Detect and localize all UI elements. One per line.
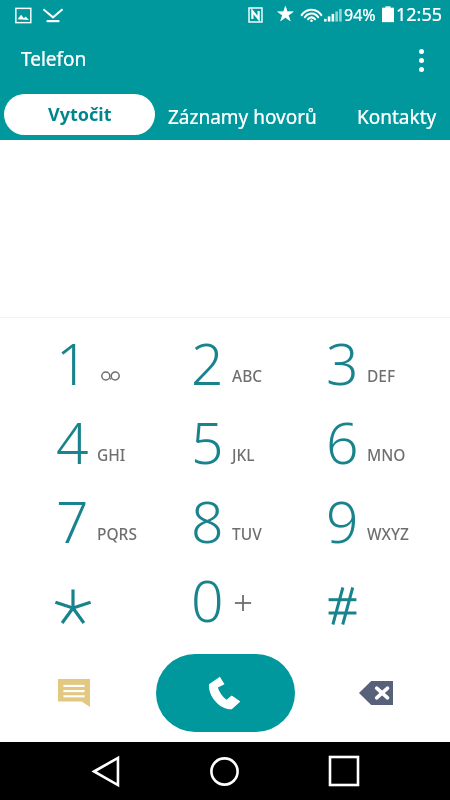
staticText: 3 xyxy=(326,324,359,392)
button[interactable] xyxy=(23,555,158,634)
button[interactable]: 8 xyxy=(158,476,293,555)
button[interactable]: 9 xyxy=(293,476,428,555)
staticText: 5 xyxy=(191,403,224,471)
button[interactable]: Send message xyxy=(24,644,124,742)
button[interactable]: More options xyxy=(399,38,443,82)
staticText: 1 xyxy=(56,324,89,392)
staticText: 0 xyxy=(191,561,224,629)
button[interactable]: Back xyxy=(76,742,136,800)
staticText: 7 xyxy=(56,482,89,550)
button[interactable]: 1 xyxy=(23,318,158,397)
button[interactable]: Záznamy hovorů xyxy=(163,96,321,137)
button[interactable]: Home xyxy=(194,742,254,800)
staticText: 6 xyxy=(326,403,359,471)
staticText: MNO xyxy=(367,444,406,465)
staticText: 8 xyxy=(191,482,224,550)
button[interactable]: 7 xyxy=(23,476,158,555)
staticText: Záznamy hovorů xyxy=(168,104,317,130)
staticText: Vytočit xyxy=(48,102,112,127)
staticText: WXYZ xyxy=(367,523,410,544)
button[interactable]: 5 xyxy=(158,397,293,476)
staticText: Telefon xyxy=(21,46,87,72)
staticText: 94% xyxy=(344,4,376,26)
staticText: JKL xyxy=(232,444,255,465)
staticText: 2 xyxy=(191,324,224,392)
staticText: 4 xyxy=(56,403,89,471)
staticText: TUV xyxy=(232,523,262,544)
button[interactable]: 3 xyxy=(293,318,428,397)
staticText: Kontakty xyxy=(357,104,437,130)
button[interactable]: 6 xyxy=(293,397,428,476)
staticText: 9 xyxy=(326,482,359,550)
staticText: DEF xyxy=(367,365,396,386)
staticText: ★ xyxy=(276,2,295,26)
button[interactable]: 0 xyxy=(158,555,293,634)
staticText: 12:55 xyxy=(396,2,443,27)
button[interactable]: Vytočit xyxy=(4,94,155,135)
staticText: ABC xyxy=(232,365,263,386)
button[interactable]: Kontakty xyxy=(352,96,442,137)
button[interactable]: Recents xyxy=(314,742,374,800)
button[interactable]: 4 xyxy=(23,397,158,476)
button[interactable]: Backspace xyxy=(326,644,426,742)
button[interactable] xyxy=(293,555,428,634)
staticText: PQRS xyxy=(97,523,137,544)
staticText: GHI xyxy=(97,444,126,465)
button[interactable]: 2 xyxy=(158,318,293,397)
button[interactable]: Call xyxy=(156,654,295,732)
